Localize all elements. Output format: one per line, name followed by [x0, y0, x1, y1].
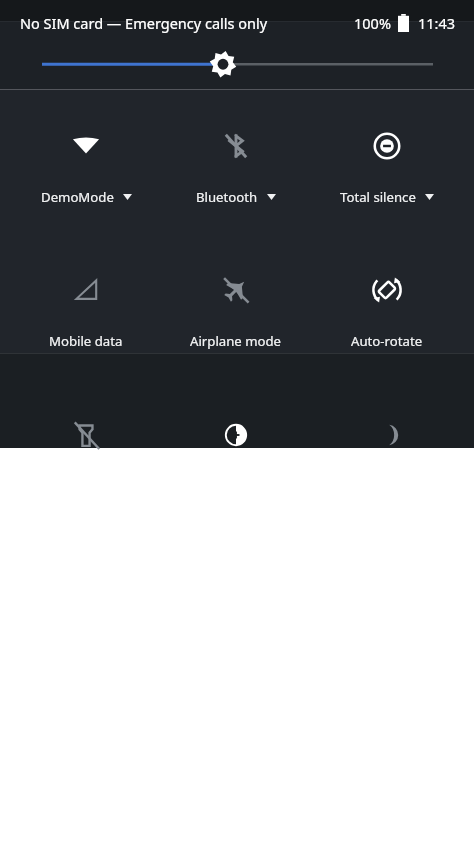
- staticText: Auto-rotate: [351, 332, 423, 350]
- button[interactable]: Mobile data: [59, 263, 113, 317]
- button[interactable]: Location: [209, 408, 263, 462]
- staticText: Airplane mode: [190, 332, 282, 350]
- button[interactable]: Brightness slider: [0, 44, 474, 88]
- staticText: 11:43: [418, 13, 456, 33]
- staticText: Total silence: [340, 188, 416, 206]
- button[interactable]: Bluetooth: [209, 119, 263, 173]
- button[interactable]: Night light: [360, 408, 414, 462]
- staticText: Bluetooth: [196, 188, 258, 206]
- button[interactable]: Mobile data: [6, 329, 166, 353]
- button[interactable]: Total silence: [307, 185, 467, 209]
- button[interactable]: Airplane mode: [156, 329, 316, 353]
- staticText: Mobile data: [49, 332, 123, 350]
- button[interactable]: Airplane mode: [209, 263, 263, 317]
- staticText: 100%: [354, 13, 391, 33]
- button[interactable]: Auto-rotate: [307, 329, 467, 353]
- button[interactable]: Total silence: [360, 119, 414, 173]
- button[interactable]: Wi-Fi: [59, 119, 113, 173]
- staticText: No SIM card — Emergency calls only: [20, 13, 268, 33]
- button[interactable]: Flashlight: [59, 408, 113, 462]
- button[interactable]: Bluetooth: [156, 185, 316, 209]
- button[interactable]: Auto-rotate: [360, 263, 414, 317]
- staticText: DemoMode: [41, 188, 114, 206]
- button[interactable]: DemoMode: [6, 185, 166, 209]
